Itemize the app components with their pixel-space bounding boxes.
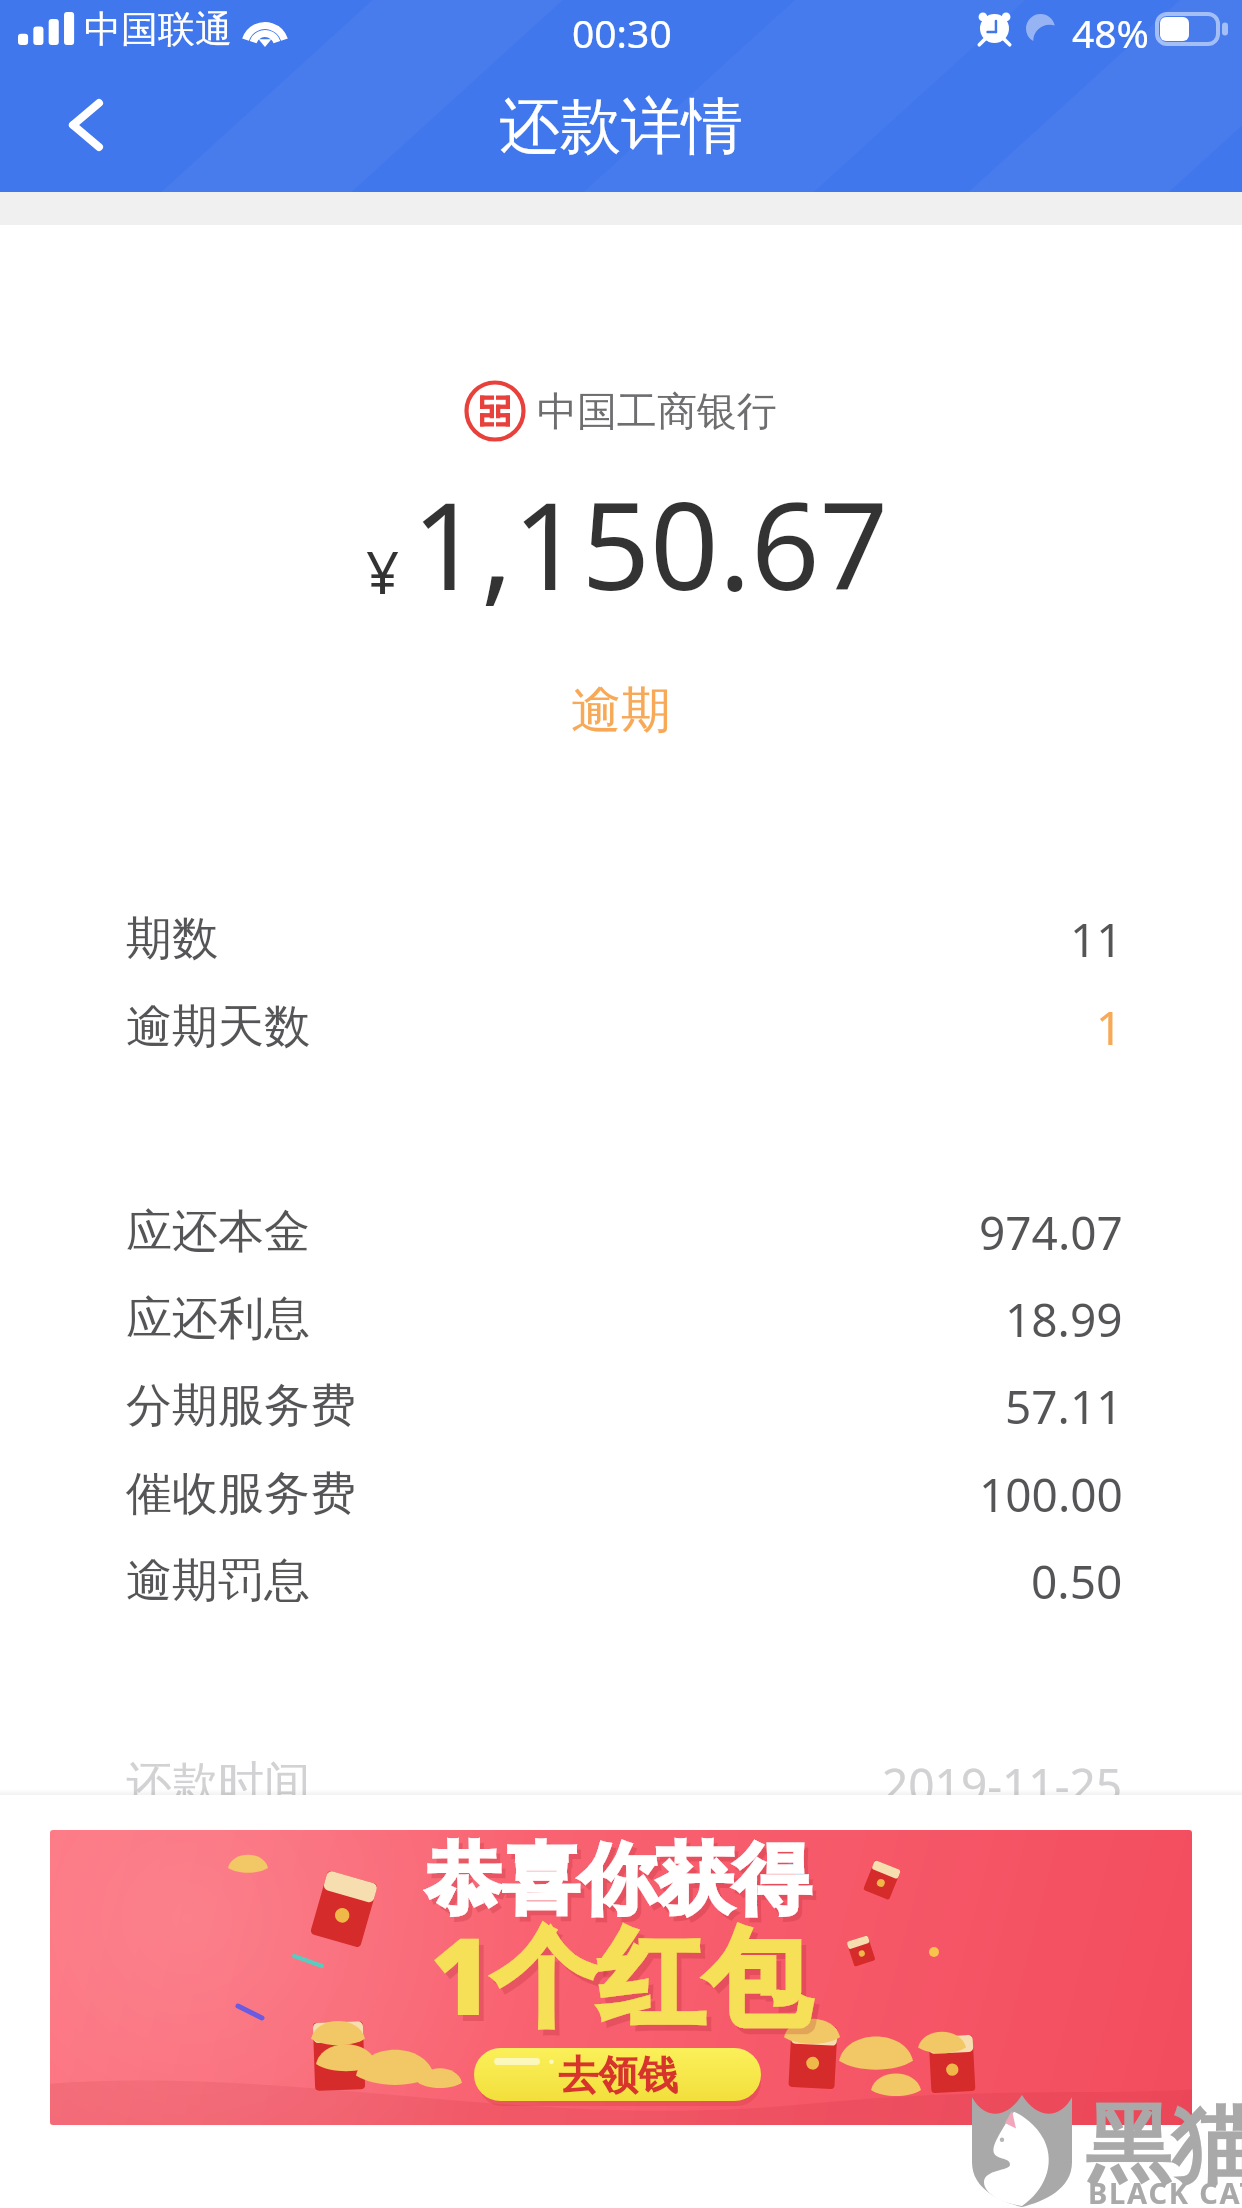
button[interactable]: 催收服务费 <box>0 1450 1242 1538</box>
button[interactable]: 应还利息 <box>0 1275 1242 1363</box>
staticText: 00:30 <box>572 6 672 59</box>
staticText: 应还本金 <box>126 1203 310 1261</box>
staticText: 11 <box>1070 908 1123 971</box>
staticText: 逾期 <box>571 679 671 742</box>
staticText: 逾期罚息 <box>126 1552 310 1610</box>
button[interactable]: 还款时间 <box>0 1740 1242 1795</box>
staticText: 还款时间 <box>126 1755 310 1795</box>
staticText: 还款详情 <box>499 88 743 165</box>
button[interactable]: 应还本金 <box>0 1188 1242 1276</box>
button[interactable]: 分期服务费 <box>0 1362 1242 1450</box>
staticText: 去领钱 <box>558 2050 678 2100</box>
staticText: 恭喜你获得 <box>429 1837 814 1934</box>
button[interactable]: 逾期天数 <box>0 983 1242 1071</box>
staticText: 974.07 <box>979 1201 1123 1264</box>
staticText: 分期服务费 <box>126 1377 356 1435</box>
staticText: 1个红包 <box>430 1902 811 2047</box>
staticText: 100.00 <box>979 1463 1123 1526</box>
staticText: 恭喜你获得 <box>425 1832 810 1929</box>
button[interactable]: 期数 <box>0 895 1242 983</box>
staticText: 2019-11-25 <box>882 1753 1123 1795</box>
staticText: 期数 <box>126 910 218 968</box>
button[interactable]: 恭喜你获得 <box>50 1830 1192 2125</box>
staticText: 逾期天数 <box>126 998 310 1056</box>
staticText: 18.99 <box>1005 1288 1123 1351</box>
staticText: 应还利息 <box>126 1290 310 1348</box>
staticText: 0.50 <box>1031 1550 1123 1613</box>
staticText: 中国工商银行 <box>537 386 777 436</box>
button[interactable]: 去领钱 <box>474 2048 761 2101</box>
staticText: ¥ <box>366 532 400 611</box>
staticText: 1,150.67 <box>412 462 889 625</box>
button[interactable]: 逾期罚息 <box>0 1537 1242 1625</box>
staticText: 57.11 <box>1005 1375 1123 1438</box>
staticText: 黑猫 <box>1085 2091 1242 2199</box>
button[interactable]: Back <box>38 85 118 165</box>
staticText: 48% <box>1072 6 1150 59</box>
staticText: 1个红包 <box>435 1908 816 2053</box>
staticText: 1 <box>1096 996 1123 1059</box>
staticText: BLACK CAT <box>1088 2173 1242 2208</box>
staticText: 催收服务费 <box>126 1465 356 1523</box>
staticText: 中国联通 <box>84 6 232 53</box>
